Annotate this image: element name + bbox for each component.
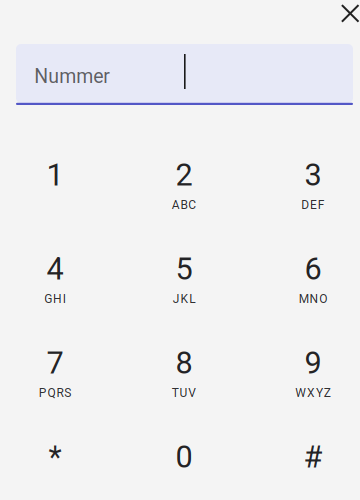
- staticText: TUV: [172, 386, 196, 400]
- staticText: 7: [46, 345, 63, 381]
- staticText: 9: [304, 345, 321, 381]
- staticText: DEF: [301, 198, 325, 212]
- staticText: 5: [175, 251, 192, 287]
- button[interactable]: Nummer: [16, 44, 353, 106]
- button[interactable]: 5: [136, 249, 232, 337]
- button[interactable]: 1: [7, 155, 103, 243]
- staticText: 2: [175, 157, 192, 193]
- staticText: ABC: [172, 198, 196, 212]
- button[interactable]: 6: [265, 249, 360, 337]
- staticText: 0: [175, 439, 192, 475]
- button[interactable]: *: [7, 437, 103, 500]
- button[interactable]: 0: [136, 437, 232, 500]
- button[interactable]: 8: [136, 343, 232, 431]
- staticText: 8: [175, 345, 192, 381]
- staticText: 1: [46, 157, 63, 193]
- staticText: PQRS: [39, 386, 71, 400]
- button[interactable]: Close: [333, 0, 360, 30]
- staticText: Nummer: [34, 65, 110, 88]
- staticText: *: [48, 439, 61, 475]
- staticText: 4: [46, 251, 63, 287]
- staticText: WXYZ: [295, 386, 331, 400]
- button[interactable]: 4: [7, 249, 103, 337]
- button[interactable]: 7: [7, 343, 103, 431]
- staticText: #: [303, 439, 322, 475]
- button[interactable]: 9: [265, 343, 360, 431]
- button[interactable]: 2: [136, 155, 232, 243]
- staticText: 3: [304, 157, 321, 193]
- button[interactable]: 3: [265, 155, 360, 243]
- button[interactable]: #: [265, 437, 360, 500]
- staticText: 6: [304, 251, 321, 287]
- staticText: MNO: [299, 292, 327, 306]
- staticText: JKL: [173, 292, 195, 306]
- staticText: GHI: [44, 292, 66, 306]
